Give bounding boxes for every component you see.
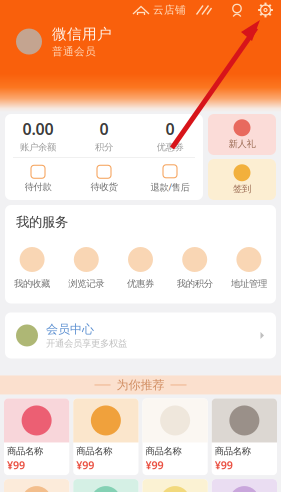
staticText: 积分 [95, 141, 113, 153]
button[interactable]: 退款/售后 [137, 165, 203, 193]
staticText: ¥99 [215, 458, 233, 472]
staticText: 商品名称 [76, 445, 112, 457]
staticText: 开通会员享更多权益 [46, 338, 127, 349]
button[interactable]: Settings [257, 1, 274, 18]
button[interactable]: 优惠券 [113, 247, 168, 289]
button[interactable]: Account [230, 2, 244, 17]
button[interactable]: 商品名称 [4, 479, 69, 492]
button[interactable]: 浏览记录 [59, 247, 113, 289]
staticText: 待付款 [24, 181, 51, 193]
button[interactable]: 商品名称 [142, 479, 208, 492]
staticText: 待收货 [90, 181, 117, 193]
staticText: 签到 [233, 183, 251, 195]
button[interactable]: 商品名称 [212, 479, 277, 492]
staticText: 普通会员 [52, 45, 96, 58]
staticText: 新人礼 [228, 138, 255, 150]
staticText: 我的服务 [16, 214, 68, 230]
button[interactable]: 商品名称 [212, 398, 277, 475]
button[interactable]: Scan [195, 3, 213, 16]
staticText: 地址管理 [231, 278, 267, 289]
button[interactable]: 商品名称 [73, 479, 138, 492]
button[interactable]: 0 [71, 118, 137, 153]
staticText: 商品名称 [145, 445, 181, 457]
staticText: 0 [165, 118, 174, 139]
button[interactable]: 地址管理 [222, 247, 276, 289]
button[interactable]: 0.00 [5, 118, 71, 153]
staticText: 我的积分 [177, 278, 213, 289]
staticText: 0 [99, 118, 108, 139]
button[interactable]: 待收货 [71, 165, 137, 193]
button[interactable]: 会员中心 [5, 312, 276, 358]
staticText: 退款/售后 [150, 181, 189, 193]
staticText: 云店铺 [153, 3, 186, 16]
staticText: 商品名称 [215, 445, 251, 457]
staticText: 0.00 [22, 118, 53, 139]
button[interactable]: 云店铺 [132, 3, 186, 16]
staticText: 微信用户 [52, 25, 112, 43]
staticText: 优惠券 [156, 141, 183, 153]
staticText: 优惠券 [127, 278, 154, 289]
staticText: ¥99 [7, 458, 25, 472]
staticText: 会员中心 [46, 322, 94, 337]
button[interactable]: 0 [137, 118, 203, 153]
staticText: 账户余额 [20, 141, 56, 153]
button[interactable]: 商品名称 [4, 398, 69, 475]
staticText: 为你推荐 [116, 378, 164, 392]
button[interactable]: 商品名称 [73, 398, 138, 475]
staticText: 浏览记录 [68, 278, 104, 289]
staticText: 商品名称 [7, 445, 43, 457]
button[interactable]: 签到 [208, 159, 276, 200]
button[interactable]: 商品名称 [142, 398, 208, 475]
button[interactable]: 新人礼 [208, 114, 276, 155]
button[interactable]: 待付款 [5, 165, 71, 193]
button[interactable]: 我的收藏 [5, 247, 59, 289]
staticText: ¥99 [76, 458, 94, 472]
button[interactable]: 我的积分 [168, 247, 222, 289]
staticText: 我的收藏 [14, 278, 50, 289]
staticText: ¥99 [145, 458, 163, 472]
